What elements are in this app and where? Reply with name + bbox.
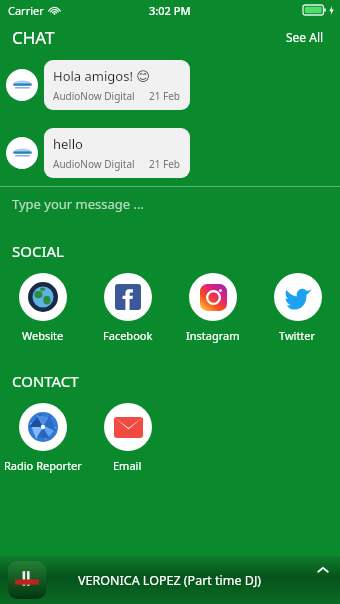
button[interactable]: Radio Reporter	[0, 403, 85, 473]
staticText: CONTACT	[12, 371, 79, 391]
staticText: SOCIAL	[12, 241, 64, 261]
staticText: Twitter	[279, 328, 316, 343]
staticText: AudioNow Digital	[53, 157, 135, 171]
staticText: AudioNow Digital	[53, 89, 135, 103]
button[interactable]: See All	[282, 25, 328, 49]
staticText: Hola amigos! 😊	[53, 67, 150, 85]
staticText: 3:02 PM	[149, 3, 191, 18]
staticText: See All	[286, 29, 324, 45]
staticText: Radio Reporter	[4, 458, 82, 473]
button[interactable]: VERONICA LOPEZ (Part time DJ)	[0, 556, 340, 604]
button[interactable]: Instagram	[170, 273, 255, 343]
staticText: Facebook	[103, 328, 153, 343]
staticText: Type your message ...	[12, 195, 144, 213]
button[interactable]: Facebook	[85, 273, 170, 343]
button[interactable]: Twitter	[255, 273, 340, 343]
button[interactable]: Type your message ...	[0, 187, 340, 221]
button[interactable]: hello	[6, 128, 334, 178]
staticText: Email	[113, 458, 142, 473]
staticText: Instagram	[186, 328, 240, 343]
staticText: CHAT	[12, 26, 55, 49]
staticText: Carrier	[8, 3, 44, 18]
staticText: hello	[53, 135, 83, 153]
button[interactable]: Expand player	[314, 561, 332, 579]
button[interactable]: Hola amigos! 😊	[6, 60, 334, 110]
staticText: VERONICA LOPEZ (Part time DJ)	[78, 572, 262, 589]
staticText: 21 Feb	[149, 89, 181, 103]
button[interactable]: Email	[85, 403, 170, 473]
staticText: Website	[22, 328, 64, 343]
staticText: 21 Feb	[149, 157, 181, 171]
button[interactable]: Website	[0, 273, 85, 343]
